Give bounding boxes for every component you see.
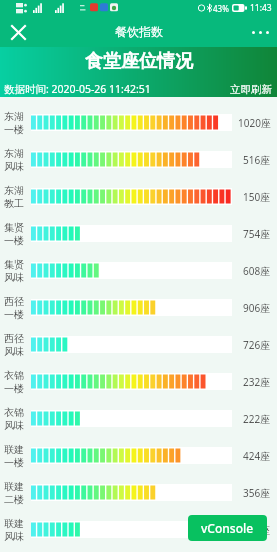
button[interactable]: 联建 [0,474,277,511]
button[interactable]: 联建 [0,437,277,474]
staticText: 356座 [243,486,271,500]
staticText: 风味 [4,160,24,173]
staticText: 立即刷新 [230,83,272,96]
staticText: 衣锦 [4,406,24,419]
staticText: 11:43 [250,2,272,14]
staticText: 一楼 [4,234,24,247]
staticText: 风味 [4,419,24,432]
staticText: vConsole [201,520,254,536]
staticText: 风味 [4,345,24,358]
staticText: 食堂座位情况 [85,50,193,73]
staticText: 150座 [243,190,271,204]
button[interactable]: 西径 [0,326,277,363]
staticText: 风味 [4,530,24,543]
staticText: 906座 [243,301,271,315]
staticText: 联建 [4,517,24,530]
staticText: 43% [213,3,229,14]
button[interactable]: 东湖 [0,178,277,215]
staticText: 一楼 [4,382,24,395]
staticText: 教工 [4,197,24,210]
staticText: 一楼 [4,456,24,469]
staticText: 东湖 [4,110,24,123]
staticText: 516座 [243,153,271,167]
staticText: 222座 [243,412,271,426]
staticText: 一楼 [4,308,24,321]
staticText: 754座 [243,227,271,241]
staticText: 衣锦 [4,369,24,382]
staticText: 集贤 [4,221,24,234]
staticText: 集贤 [4,258,24,271]
staticText: 餐饮指数 [115,24,163,39]
staticText: 二楼 [4,493,24,506]
staticText: 西径 [4,295,24,308]
button[interactable]: vConsole [188,515,267,541]
staticText: 一楼 [4,123,24,136]
staticText: 西径 [4,332,24,345]
staticText: 608座 [243,264,271,278]
button[interactable]: 衣锦 [0,363,277,400]
staticText: 东湖 [4,147,24,160]
button[interactable]: 集贤 [0,252,277,289]
staticText: 联建 [4,480,24,493]
button[interactable]: Close [5,19,31,45]
button[interactable]: 集贤 [0,215,277,252]
button[interactable]: More options [249,19,271,45]
staticText: 424座 [243,449,271,463]
staticText: 726座 [243,338,271,352]
staticText: 232座 [243,375,271,389]
button[interactable]: 西径 [0,289,277,326]
button[interactable]: 东湖 [0,104,277,141]
staticText: 数据时间: 2020-05-26 11:42:51 [4,82,151,96]
staticText: 联建 [4,443,24,456]
staticText: 风味 [4,271,24,284]
button[interactable]: 衣锦 [0,400,277,437]
staticText: 东湖 [4,184,24,197]
button[interactable]: 立即刷新 [230,83,272,96]
button[interactable]: 联建 [0,511,277,548]
staticText: 726座 [243,523,271,537]
button[interactable]: 东湖 [0,141,277,178]
staticText: 1020座 [238,116,271,130]
